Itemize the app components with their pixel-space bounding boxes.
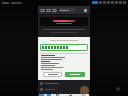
- button[interactable]: Tab 4: [76, 94, 89, 96]
- button[interactable]: [65, 72, 85, 77]
- button[interactable]: Profile: [80, 86, 89, 95]
- button[interactable]: Toolbar action 2: [46, 8, 51, 13]
- button[interactable]: [43, 72, 62, 77]
- button[interactable]: Desktop widget: [116, 87, 120, 91]
- button[interactable]: Address bar: [59, 8, 75, 12]
- button[interactable]: Input field: [40, 44, 88, 51]
- button[interactable]: Tab 3: [63, 94, 76, 96]
- button[interactable]: Menu: [83, 8, 88, 13]
- button[interactable]: Tab 2: [51, 94, 63, 96]
- button[interactable]: [39, 94, 51, 96]
- button[interactable]: Toolbar action 1: [40, 8, 45, 13]
- button[interactable]: Toolbar action 3: [52, 8, 57, 13]
